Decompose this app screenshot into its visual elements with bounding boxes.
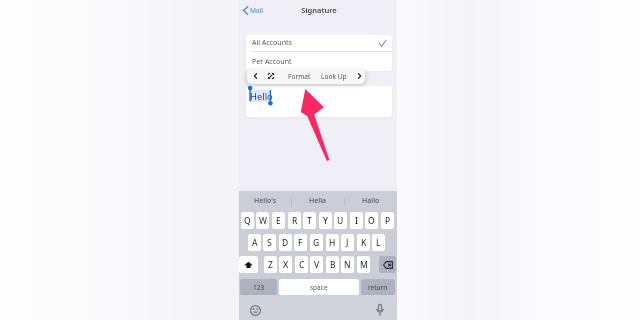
button[interactable]: T [303,212,316,229]
staticText: W [259,215,267,227]
button[interactable]: D [279,234,292,251]
staticText: Y [323,215,328,227]
staticText: U [337,215,344,227]
staticText: X [283,259,289,271]
button[interactable]: Backspace [379,256,396,273]
button[interactable]: Y [319,212,332,229]
staticText: All Accounts [252,38,292,48]
button[interactable]: space [279,279,359,295]
staticText: P [385,215,391,227]
staticText: Signature [240,5,398,15]
staticText: space [310,283,328,292]
button[interactable]: F [294,234,307,251]
staticText: M [360,259,368,271]
button[interactable]: G [310,234,323,251]
button[interactable]: Shift [239,256,258,273]
button[interactable]: Emoji [247,302,263,318]
button[interactable]: Select text [264,68,278,84]
staticText: T [307,215,312,227]
button[interactable]: J [341,234,354,251]
button[interactable]: A [248,234,261,251]
staticText: Q [244,215,251,227]
staticText: K [361,237,367,249]
button[interactable]: Mail [242,5,264,16]
button[interactable]: U [334,212,347,229]
button[interactable]: Hella [292,191,344,211]
button[interactable]: Look Up [318,68,349,84]
button[interactable]: 123 [240,279,277,295]
staticText: C [299,259,305,271]
button[interactable]: W [256,212,269,229]
button[interactable]: Hallo [345,191,397,211]
button[interactable]: P [381,212,394,229]
button[interactable]: L [372,234,385,251]
staticText: Hello's [254,196,277,206]
staticText: V [314,259,320,271]
staticText: A [252,237,258,249]
button[interactable]: I [350,212,363,229]
button[interactable]: R [288,212,301,229]
staticText: Per Account [252,57,292,67]
staticText: Hello [250,90,273,103]
staticText: Look Up [321,72,347,81]
staticText: I [355,215,359,227]
button[interactable]: Z [264,256,277,273]
button[interactable]: X [279,256,292,273]
button[interactable]: Previous [249,68,261,84]
button[interactable]: S [263,234,276,251]
staticText: N [344,259,351,271]
staticText: J [346,237,349,249]
button[interactable]: V [310,256,323,273]
button[interactable]: C [295,256,308,273]
staticText: O [368,215,375,227]
button[interactable]: M [357,256,370,273]
button[interactable]: Q [241,212,254,229]
staticText: return [368,283,388,292]
staticText: E [276,215,281,227]
button[interactable]: N [341,256,354,273]
staticText: H [329,237,336,249]
button[interactable]: B [326,256,339,273]
staticText: 123 [253,283,265,292]
staticText: Mail [250,6,263,15]
staticText: S [267,237,272,249]
staticText: R [292,215,298,227]
button[interactable]: Next [353,68,365,84]
staticText: G [313,237,320,249]
button[interactable]: All Accounts [246,35,392,51]
button[interactable]: Hello's [239,191,291,211]
button[interactable]: return [361,279,395,295]
staticText: D [282,237,289,249]
staticText: Format [288,72,311,81]
button[interactable]: O [365,212,378,229]
button[interactable]: K [357,234,370,251]
button[interactable]: Format [285,68,313,84]
staticText: B [330,259,336,271]
staticText: Z [268,259,273,271]
staticText: Hella [309,196,327,206]
button[interactable]: H [326,234,339,251]
button[interactable]: Per Account [246,52,392,71]
button[interactable]: E [272,212,285,229]
staticText: Hallo [362,196,380,206]
button[interactable]: Dictate [372,302,388,318]
staticText: L [376,237,381,249]
staticText: F [298,237,303,249]
